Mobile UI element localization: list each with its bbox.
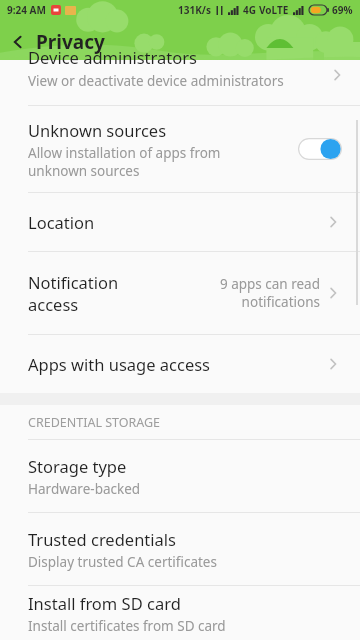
button[interactable]: Trusted credentials	[0, 513, 360, 585]
button[interactable]: Apps with usage access	[0, 335, 360, 393]
staticText: 4G	[243, 3, 256, 17]
staticText: Privacy	[36, 29, 105, 55]
button[interactable]: Storage type	[0, 440, 360, 512]
staticText: Hardware-backed	[28, 480, 141, 498]
staticText: Device administrators	[28, 46, 197, 68]
staticText: Install from SD card	[28, 592, 181, 614]
button[interactable]: Unknown sources	[0, 106, 360, 192]
button[interactable]: Install from SD card	[0, 586, 360, 640]
staticText: Install certificates from SD card	[28, 617, 226, 635]
button[interactable]: Notification access	[0, 252, 360, 334]
staticText: CREDENTIAL STORAGE	[28, 414, 161, 431]
staticText: Display trusted CA certificates	[28, 553, 217, 571]
staticText: Allow installation of apps from unknown …	[28, 144, 270, 180]
staticText: Location	[28, 211, 95, 233]
staticText: Apps with usage access	[28, 353, 211, 375]
staticText: 9 apps can read notifications	[180, 275, 320, 311]
button[interactable]: Device administrators	[0, 60, 360, 105]
staticText: Notification access	[28, 271, 148, 315]
staticText: Storage type	[28, 455, 127, 477]
staticText: Trusted credentials	[28, 528, 176, 550]
staticText: Unknown sources	[28, 119, 167, 141]
button[interactable]	[298, 138, 342, 160]
staticText: View or deactivate device administrators	[28, 72, 284, 90]
button[interactable]: Location	[0, 193, 360, 251]
staticText: 69%	[332, 3, 353, 17]
staticText: 131K/s	[178, 3, 211, 17]
staticText: VoLTE	[259, 3, 289, 17]
button[interactable]: Back	[0, 24, 36, 60]
staticText: 9:24 AM	[7, 3, 46, 17]
